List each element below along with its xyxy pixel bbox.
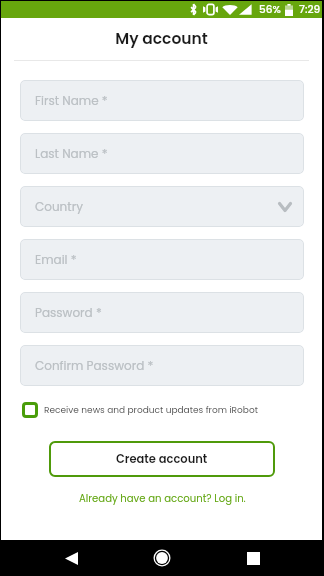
- staticText: Receive news and product updates from iR…: [44, 404, 258, 417]
- button[interactable]: First Name *: [20, 80, 304, 121]
- button[interactable]: Create account: [49, 441, 275, 477]
- staticText: Password *: [35, 304, 102, 321]
- button[interactable]: Last Name *: [20, 133, 304, 174]
- staticText: Email *: [35, 251, 77, 268]
- staticText: First Name *: [35, 92, 108, 109]
- button[interactable]: Recent apps: [235, 540, 271, 576]
- button[interactable]: Home: [144, 540, 180, 576]
- button[interactable]: Already have an account? Log in.: [79, 491, 246, 505]
- staticText: My account: [1, 28, 322, 50]
- button[interactable]: Password *: [20, 292, 304, 333]
- button[interactable]: Email *: [20, 239, 304, 280]
- staticText: Confirm Password *: [35, 357, 154, 374]
- staticText: Country: [35, 198, 83, 215]
- button[interactable]: Country: [20, 186, 304, 227]
- staticText: 7:29: [299, 2, 321, 17]
- staticText: Create account: [116, 451, 208, 467]
- button[interactable]: Confirm Password *: [20, 345, 304, 386]
- button[interactable]: Back: [53, 540, 89, 576]
- staticText: Last Name *: [35, 145, 108, 162]
- button[interactable]: Receive news and product updates from iR…: [20, 402, 304, 418]
- staticText: 56%: [259, 2, 281, 17]
